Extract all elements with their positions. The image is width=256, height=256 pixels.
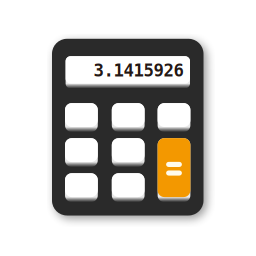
button[interactable]: 1 [0, 0, 256, 256]
button[interactable]: 5 [0, 0, 256, 256]
button[interactable]: 8 [0, 0, 256, 256]
button[interactable]: 4 [0, 0, 256, 256]
button[interactable]: 9 [0, 0, 256, 256]
button[interactable]: 2 [0, 0, 256, 256]
staticText: 3.1415926 [93, 61, 183, 80]
button[interactable]: Equals [0, 0, 256, 256]
button[interactable]: 7 [0, 0, 256, 256]
